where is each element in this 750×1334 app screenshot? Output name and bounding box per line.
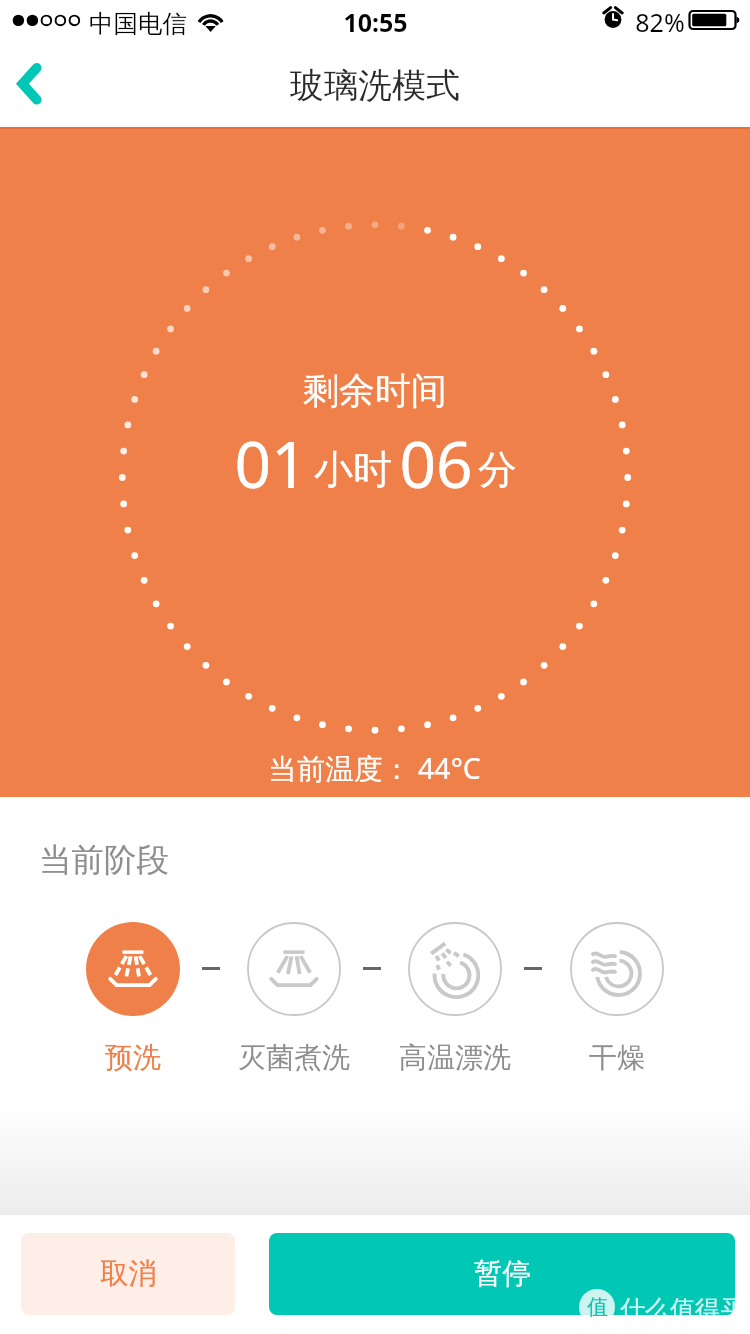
staticText: 10:55 [343,5,408,39]
staticText: 中国电信 [89,8,187,39]
staticText: 暂停 [474,1256,531,1292]
staticText: 干燥 [589,1040,645,1075]
staticText: 取消 [100,1256,157,1292]
staticText: 玻璃洗模式 [290,64,460,107]
staticText: 当前阶段 [39,840,169,881]
staticText: 当前温度： 44°C [268,749,481,788]
staticText: 什么值得买 [620,1294,745,1325]
staticText: 01 [234,420,308,495]
staticText: 分 [478,445,517,494]
button[interactable]: 预洗 [73,922,193,1075]
staticText: 06 [399,420,473,495]
button[interactable]: Back [0,55,76,128]
staticText: 82% [635,5,685,39]
staticText: 值 [587,1294,608,1320]
button[interactable]: 干燥 [557,922,677,1075]
staticText: 小时 [314,445,392,494]
button[interactable]: 取消 [21,1233,235,1315]
button[interactable]: 暂停 [269,1233,735,1315]
staticText: 预洗 [105,1040,161,1075]
staticText: 高温漂洗 [399,1040,511,1075]
staticText: 灭菌煮洗 [238,1040,350,1075]
button[interactable]: 高温漂洗 [395,922,515,1075]
button[interactable]: 灭菌煮洗 [234,922,354,1075]
staticText: 剩余时间 [303,368,447,413]
